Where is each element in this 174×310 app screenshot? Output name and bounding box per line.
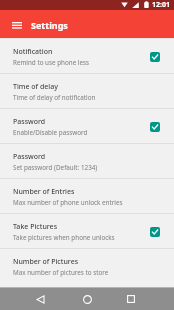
staticText: Time of delay of notification	[13, 93, 96, 102]
staticText: Max number of phone unlock entries	[13, 198, 123, 207]
button[interactable]: Number of Entries	[0, 179, 174, 214]
button[interactable]: Password	[0, 109, 174, 144]
staticText: 12:01	[152, 0, 170, 10]
staticText: Notification	[13, 47, 53, 57]
staticText: Time of delay	[13, 82, 58, 92]
staticText: Max number of pictures to store	[13, 268, 109, 277]
staticText: Password	[13, 152, 46, 162]
button[interactable]	[73, 288, 101, 310]
staticText: Settings	[31, 19, 68, 31]
button[interactable]: Number of Pictures	[0, 249, 174, 284]
button[interactable]	[26, 288, 54, 310]
button[interactable]: Notification	[0, 39, 174, 74]
button[interactable]: Password	[0, 144, 174, 179]
staticText: Number of Entries	[13, 187, 75, 197]
staticText: Number of Pictures	[13, 257, 79, 267]
staticText: Password	[13, 117, 46, 127]
staticText: Remind to use phone less	[13, 58, 90, 67]
button[interactable]: Time of delay	[0, 74, 174, 109]
button[interactable]	[117, 288, 145, 310]
staticText: Set password (Default: 1234)	[13, 163, 98, 172]
staticText: Take pictures when phone unlocks	[13, 233, 115, 242]
staticText: Enable/Disable password	[13, 128, 88, 137]
button[interactable]: Take Pictures	[0, 214, 174, 249]
staticText: Take Pictures	[13, 222, 58, 232]
button[interactable]	[0, 10, 28, 38]
